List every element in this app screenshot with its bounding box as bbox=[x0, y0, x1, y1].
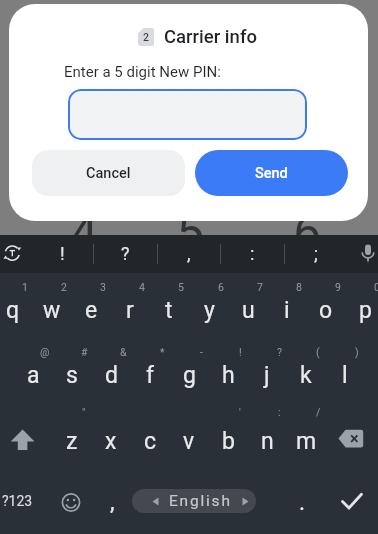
button[interactable]: f bbox=[131, 362, 169, 389]
button[interactable]: v bbox=[170, 428, 208, 455]
button[interactable]: z bbox=[53, 428, 91, 455]
staticText: a bbox=[27, 362, 40, 389]
staticText: s bbox=[66, 362, 78, 389]
staticText: d bbox=[105, 362, 118, 389]
button[interactable]: c bbox=[131, 428, 169, 455]
staticText: 6 bbox=[218, 281, 224, 293]
button[interactable] bbox=[3, 244, 22, 263]
button[interactable]: , bbox=[169, 243, 209, 264]
button[interactable]: l bbox=[326, 362, 364, 389]
button[interactable]: a bbox=[14, 362, 52, 389]
button[interactable]: y bbox=[190, 297, 228, 324]
button[interactable]: q bbox=[0, 297, 32, 324]
staticText: , bbox=[187, 243, 191, 264]
staticText: ) bbox=[355, 346, 359, 358]
button[interactable]: n bbox=[248, 428, 286, 455]
staticText: & bbox=[120, 346, 127, 358]
staticText: u bbox=[242, 297, 255, 324]
button[interactable]: k bbox=[287, 362, 325, 389]
staticText: i bbox=[284, 297, 290, 324]
button[interactable]: o bbox=[307, 297, 345, 324]
staticText: 5 bbox=[176, 204, 205, 263]
staticText: x bbox=[105, 428, 117, 455]
button[interactable]: Cancel bbox=[32, 150, 185, 196]
staticText: y bbox=[204, 297, 215, 324]
staticText: Enter a 5 digit New PIN: bbox=[64, 63, 221, 81]
staticText: Cancel bbox=[86, 165, 131, 182]
staticText: b bbox=[222, 428, 235, 455]
button[interactable]: ! bbox=[42, 243, 82, 264]
button[interactable]: t bbox=[150, 297, 188, 324]
button[interactable]: English bbox=[132, 489, 256, 513]
button[interactable]: . bbox=[287, 489, 317, 516]
staticText: 2 bbox=[143, 31, 149, 43]
staticText: 5 bbox=[178, 281, 184, 293]
staticText: 1 bbox=[22, 281, 28, 293]
staticText: v bbox=[183, 428, 195, 455]
staticText: l bbox=[342, 362, 348, 389]
staticText: - bbox=[200, 346, 203, 358]
staticText: / bbox=[316, 406, 321, 418]
button[interactable]: : bbox=[232, 243, 272, 264]
button[interactable] bbox=[68, 89, 307, 140]
button[interactable]: Send bbox=[195, 150, 348, 196]
staticText: 6 bbox=[293, 204, 322, 263]
staticText: ! bbox=[60, 243, 65, 264]
button[interactable] bbox=[8, 427, 38, 453]
staticText: o bbox=[319, 297, 333, 324]
staticText: f bbox=[146, 362, 154, 389]
staticText: ; bbox=[314, 243, 318, 264]
staticText: : bbox=[250, 243, 255, 264]
staticText: j bbox=[264, 362, 270, 389]
staticText: 4 bbox=[139, 281, 145, 293]
button[interactable] bbox=[339, 491, 365, 511]
button[interactable]: h bbox=[209, 362, 247, 389]
button[interactable]: g bbox=[170, 362, 208, 389]
button[interactable]: ? bbox=[105, 243, 145, 264]
button[interactable]: m bbox=[287, 428, 325, 455]
button[interactable]: i bbox=[268, 297, 306, 324]
staticText: n bbox=[261, 428, 274, 455]
button[interactable]: r bbox=[111, 297, 149, 324]
staticText: . bbox=[299, 489, 306, 516]
button[interactable]: j bbox=[248, 362, 286, 389]
button[interactable]: s bbox=[53, 362, 91, 389]
staticText: 7 bbox=[257, 281, 263, 293]
button[interactable]: , bbox=[97, 489, 127, 516]
staticText: 0 bbox=[374, 281, 378, 293]
button[interactable]: x bbox=[92, 428, 130, 455]
staticText: p bbox=[359, 297, 372, 324]
staticText: , bbox=[110, 489, 115, 516]
staticText: ? bbox=[277, 346, 282, 358]
button[interactable]: u bbox=[229, 297, 267, 324]
staticText: English bbox=[169, 492, 232, 510]
button[interactable]: ?123 bbox=[0, 493, 39, 509]
button[interactable]: b bbox=[209, 428, 247, 455]
button[interactable] bbox=[61, 492, 81, 513]
staticText: h bbox=[222, 362, 235, 389]
staticText: ?123 bbox=[2, 493, 33, 509]
staticText: ? bbox=[121, 243, 130, 264]
staticText: q bbox=[6, 297, 20, 324]
staticText: 8 bbox=[296, 281, 302, 293]
staticText: c bbox=[144, 428, 157, 455]
staticText: z bbox=[66, 428, 78, 455]
button[interactable]: w bbox=[33, 297, 71, 324]
button[interactable]: e bbox=[72, 297, 110, 324]
button[interactable]: p bbox=[346, 297, 378, 324]
button[interactable]: ; bbox=[296, 243, 336, 264]
staticText: 3 bbox=[100, 281, 106, 293]
staticText: e bbox=[85, 297, 98, 324]
button[interactable] bbox=[358, 242, 378, 264]
staticText: m bbox=[296, 428, 317, 455]
staticText: ! bbox=[239, 346, 242, 358]
button[interactable]: d bbox=[92, 362, 130, 389]
staticText: # bbox=[81, 346, 88, 358]
button[interactable] bbox=[337, 428, 365, 450]
staticText: w bbox=[43, 297, 61, 324]
staticText: ' bbox=[239, 406, 241, 418]
staticText: g bbox=[183, 362, 196, 389]
staticText: r bbox=[126, 297, 134, 324]
staticText: @ bbox=[40, 346, 50, 358]
staticText: 4 bbox=[70, 204, 99, 263]
